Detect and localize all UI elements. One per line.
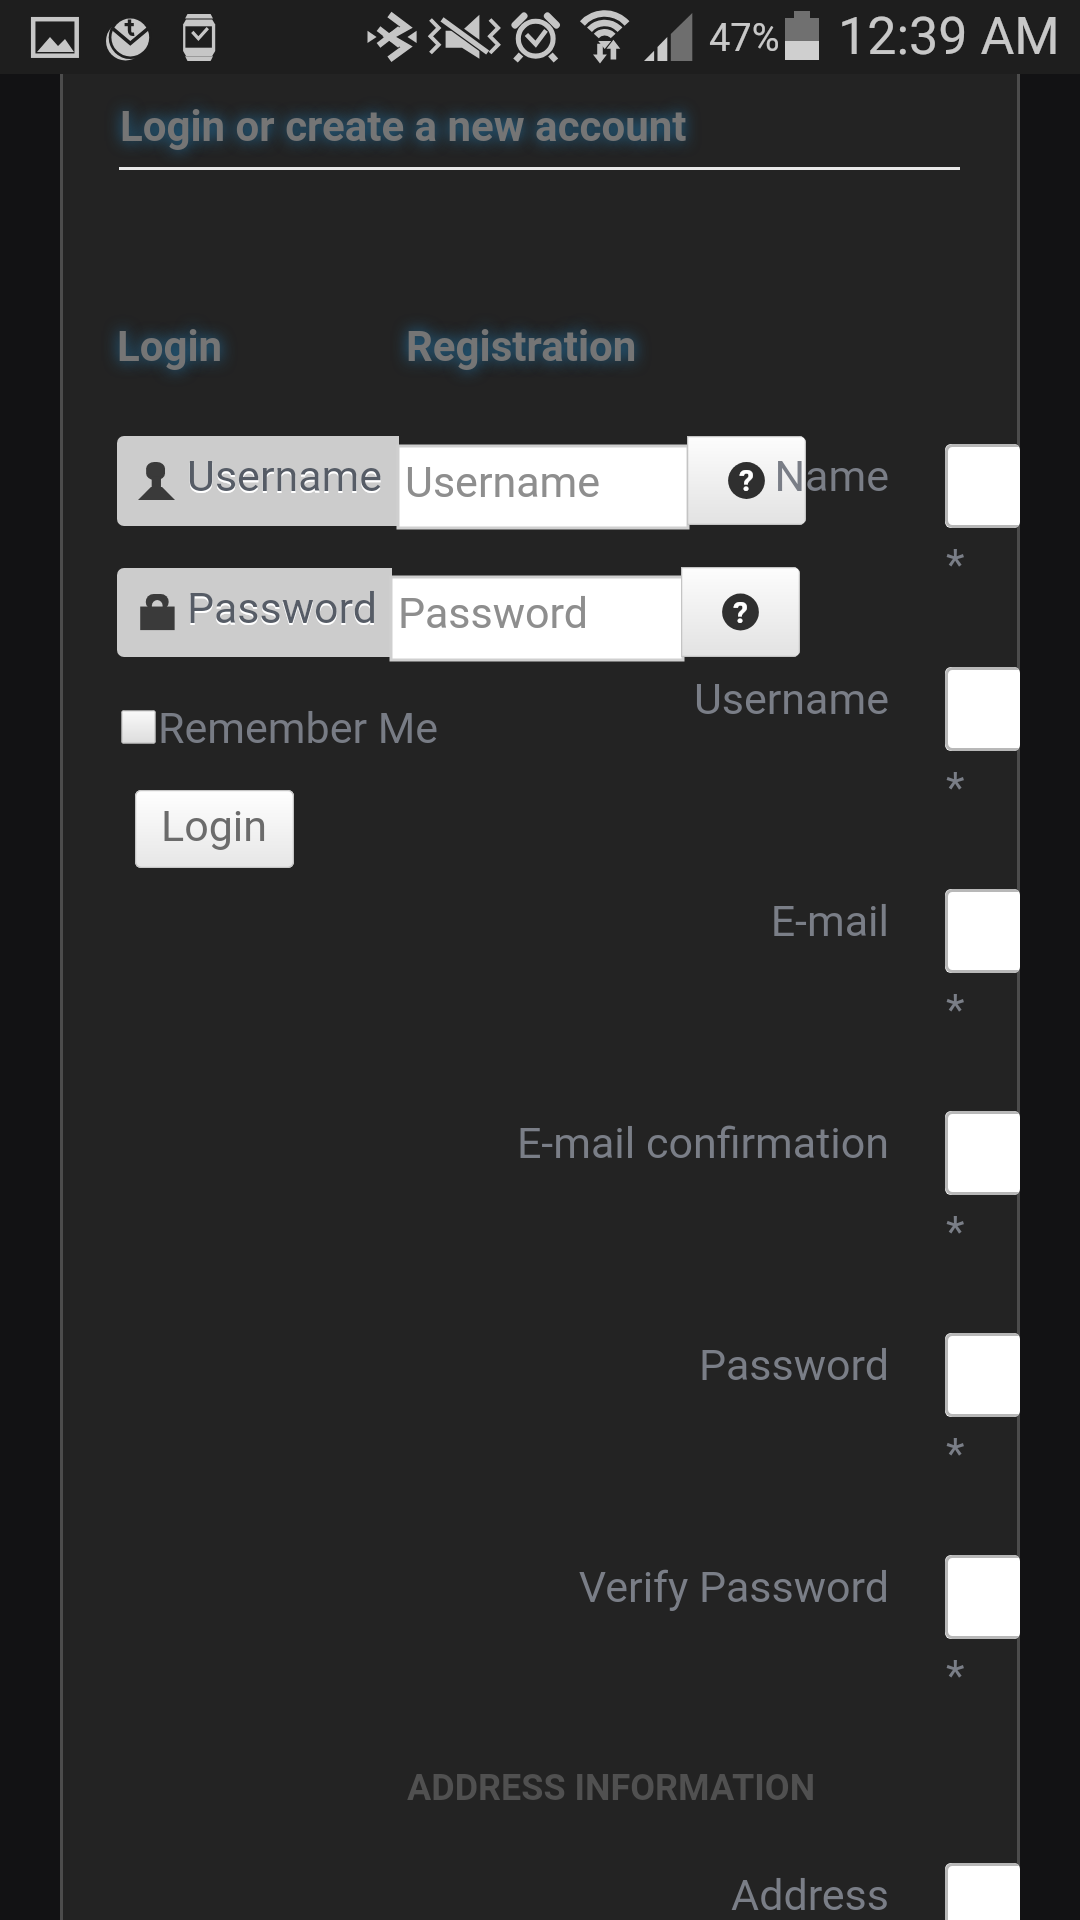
staticText: Remember Me bbox=[158, 703, 439, 751]
staticText: Verify Password bbox=[389, 1562, 889, 1612]
staticText: Password bbox=[398, 588, 588, 638]
button[interactable]: Login bbox=[135, 790, 294, 868]
button[interactable]: Login bbox=[117, 322, 223, 371]
staticText: E-mail confirmation bbox=[389, 1118, 889, 1168]
staticText: Name bbox=[389, 451, 889, 501]
button[interactable]: Registration bbox=[406, 322, 637, 371]
staticText: E-mail bbox=[389, 896, 889, 946]
button[interactable]: Username bbox=[398, 446, 688, 528]
staticText: * bbox=[946, 1206, 965, 1256]
button[interactable]: Help for Password bbox=[681, 567, 800, 657]
staticText: 12:39 AM bbox=[838, 6, 1060, 67]
staticText: Login bbox=[161, 801, 268, 851]
staticText: * bbox=[946, 1428, 965, 1478]
staticText: Login or create a new account bbox=[120, 102, 687, 151]
staticText: Registration bbox=[406, 322, 637, 371]
staticText: Password bbox=[389, 1340, 889, 1390]
staticText: Login bbox=[117, 322, 223, 371]
staticText: ADDRESS INFORMATION bbox=[407, 1767, 816, 1809]
staticText: Username bbox=[187, 451, 383, 501]
button[interactable] bbox=[945, 1863, 1020, 1920]
staticText: Address bbox=[389, 1870, 889, 1920]
button[interactable] bbox=[945, 667, 1020, 751]
staticText: Password bbox=[187, 583, 377, 633]
button[interactable] bbox=[945, 444, 1020, 528]
button[interactable] bbox=[945, 1333, 1020, 1417]
staticText: Username bbox=[389, 674, 889, 724]
staticText: Username bbox=[405, 457, 601, 507]
button[interactable]: Help for Username bbox=[687, 436, 806, 525]
staticText: * bbox=[946, 1650, 965, 1700]
button[interactable]: Password bbox=[391, 577, 683, 660]
staticText: ? bbox=[733, 595, 748, 630]
staticText: 47% bbox=[709, 16, 780, 61]
staticText: * bbox=[946, 539, 965, 589]
staticText: * bbox=[946, 984, 965, 1034]
staticText: * bbox=[946, 762, 965, 812]
button[interactable] bbox=[945, 889, 1020, 973]
button[interactable] bbox=[945, 1111, 1020, 1195]
button[interactable]: Remember Me bbox=[121, 703, 441, 751]
staticText: ? bbox=[739, 463, 754, 498]
button[interactable] bbox=[945, 1555, 1020, 1639]
